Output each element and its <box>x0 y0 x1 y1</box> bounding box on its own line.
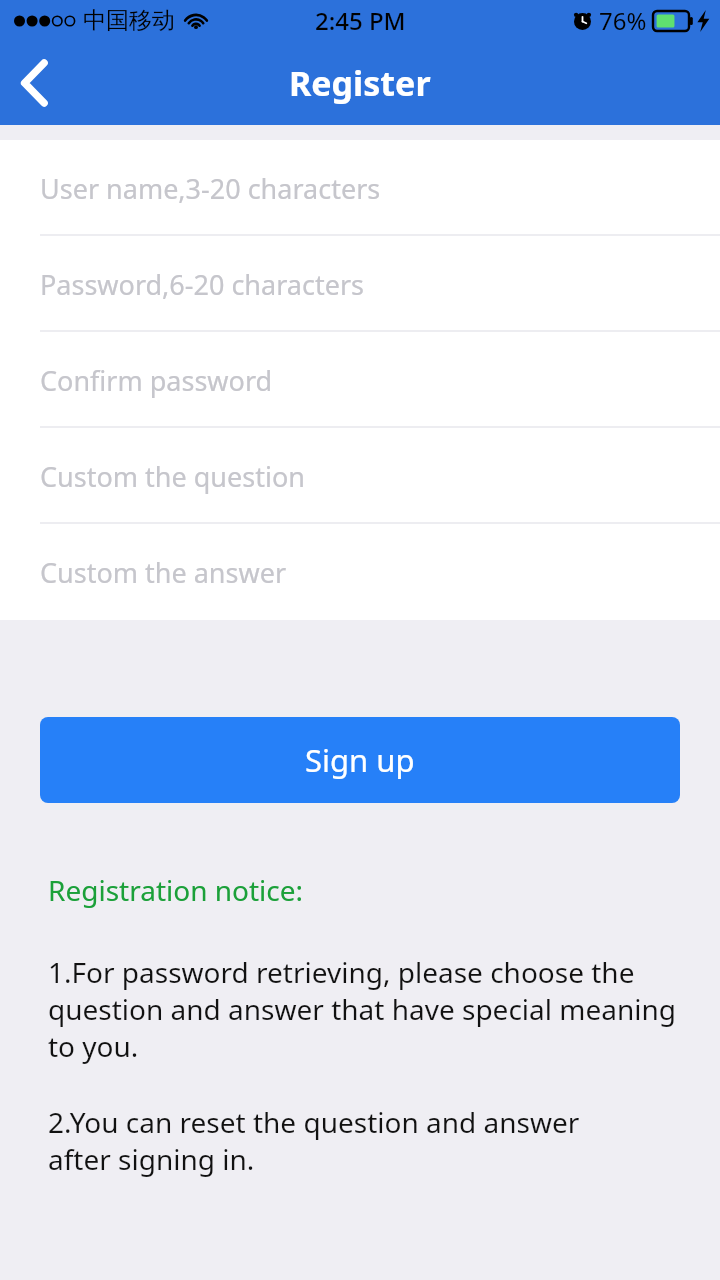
staticText: Password,6-20 characters <box>40 266 364 303</box>
button[interactable]: Custom the question <box>0 428 720 524</box>
button[interactable]: User name,3-20 characters <box>0 140 720 236</box>
button[interactable]: Confirm password <box>0 332 720 428</box>
staticText: Registration notice: <box>48 871 304 909</box>
button[interactable]: Password,6-20 characters <box>0 236 720 332</box>
staticText: Confirm password <box>40 362 273 399</box>
button[interactable]: Sign up <box>40 717 680 803</box>
staticText: 2.You can reset the question and answer … <box>48 1103 648 1178</box>
staticText: 中国移动 <box>83 6 175 35</box>
staticText: Register <box>289 60 431 106</box>
staticText: Custom the question <box>40 458 305 495</box>
staticText: 2:45 PM <box>315 4 406 37</box>
staticText: 1.For password retrieving, please choose… <box>48 953 680 1065</box>
staticText: 76% <box>599 4 647 37</box>
button[interactable]: Custom the answer <box>0 524 720 620</box>
button[interactable]: Back <box>0 48 70 118</box>
staticText: Custom the answer <box>40 554 287 591</box>
staticText: User name,3-20 characters <box>40 170 381 207</box>
staticText: Sign up <box>305 739 415 781</box>
